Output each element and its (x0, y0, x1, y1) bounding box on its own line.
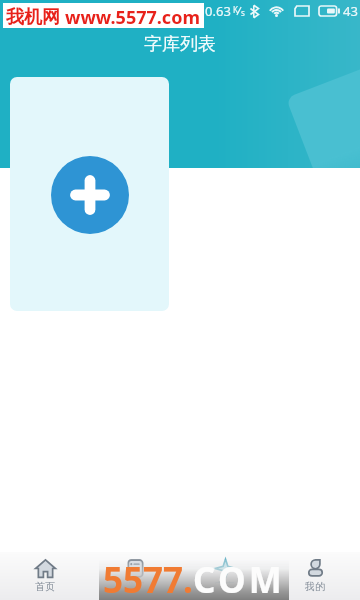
button[interactable]: 字库 (180, 552, 270, 600)
staticText: 43 (343, 2, 358, 20)
other: Add font (51, 156, 129, 234)
button[interactable]: 我的 (270, 552, 360, 600)
staticText: 我机网 (6, 6, 60, 29)
staticText: s (241, 7, 245, 18)
staticText: 0.63 (205, 2, 231, 20)
staticText: 发现 (125, 580, 145, 593)
button[interactable]: Add font (10, 77, 169, 311)
staticText: 字库列表 (144, 33, 216, 56)
staticText: www.5577.com (65, 5, 200, 30)
staticText: K (233, 4, 238, 15)
button[interactable]: 首页 (0, 552, 90, 600)
staticText: COM (193, 556, 286, 596)
staticText: 我的 (305, 580, 325, 593)
button[interactable]: 发现 (90, 552, 180, 600)
staticText: 5577. (103, 556, 193, 596)
staticText: 首页 (35, 580, 55, 593)
staticText: 字库 (215, 580, 235, 593)
